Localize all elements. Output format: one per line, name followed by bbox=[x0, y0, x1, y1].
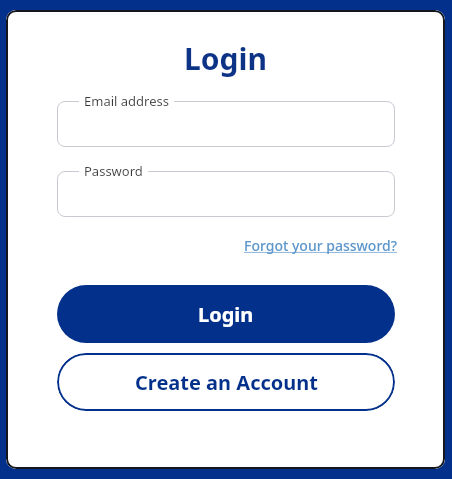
button[interactable] bbox=[57, 171, 395, 217]
staticText: Login bbox=[198, 301, 254, 328]
staticText: Create an Account bbox=[135, 369, 318, 396]
button[interactable]: Login bbox=[57, 285, 395, 343]
staticText: Password bbox=[84, 162, 143, 180]
button[interactable]: Forgot your password? bbox=[244, 236, 397, 255]
button[interactable]: Create an Account bbox=[57, 353, 395, 411]
staticText: Email address bbox=[84, 92, 169, 110]
button[interactable] bbox=[57, 101, 395, 147]
staticText: Login bbox=[6, 38, 445, 79]
staticText: Forgot your password? bbox=[244, 236, 397, 255]
